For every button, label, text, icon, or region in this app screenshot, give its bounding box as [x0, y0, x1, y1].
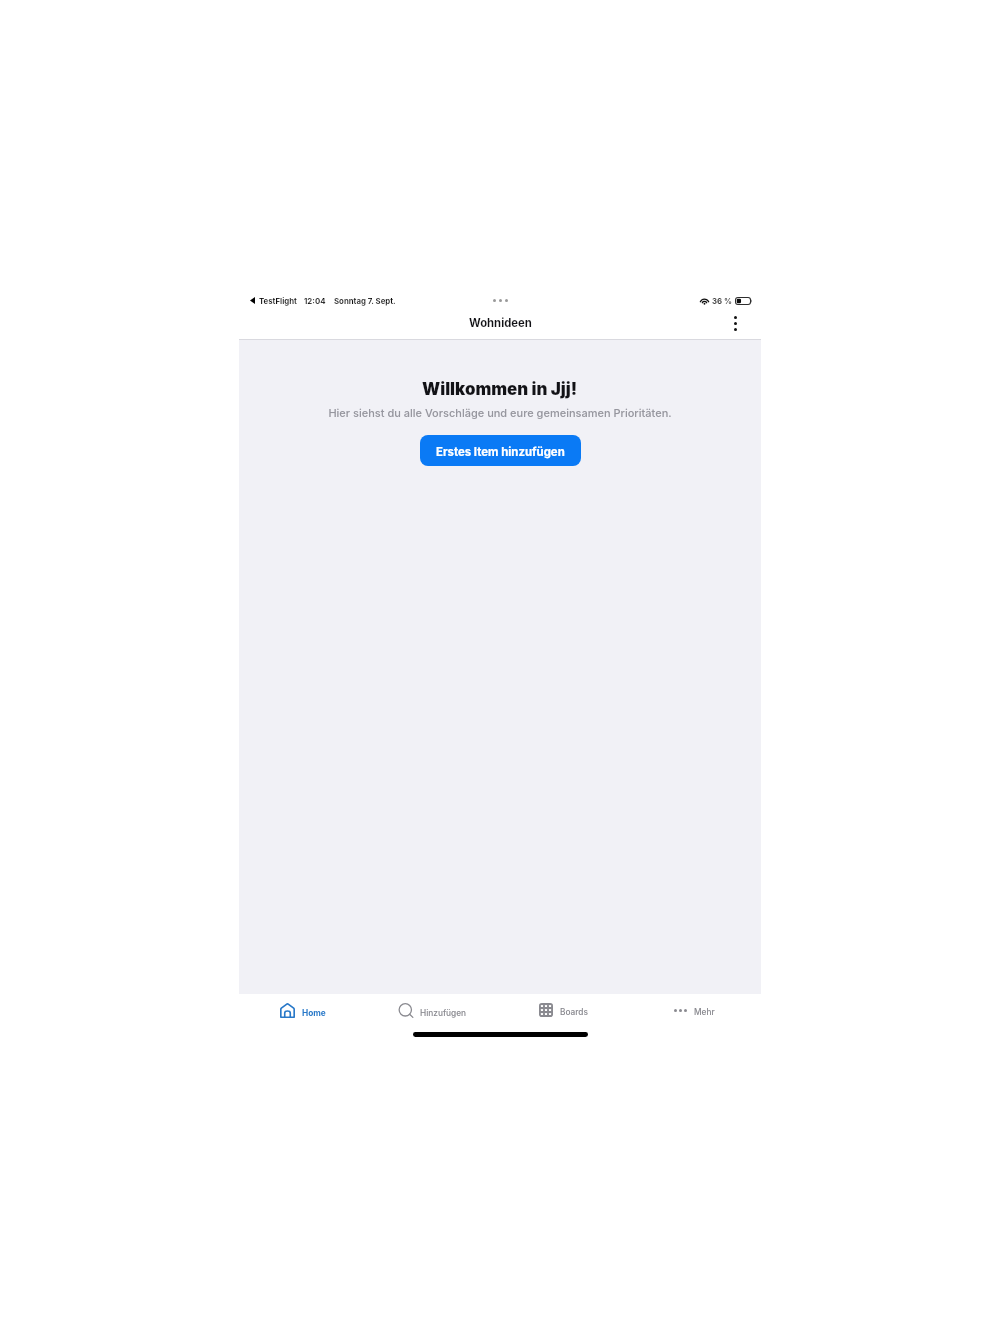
button[interactable]: Add: [368, 994, 498, 1026]
staticText: Wohnideen: [469, 316, 532, 330]
staticText: Willkommen in Jjj!: [422, 379, 578, 399]
staticText: Home: [302, 1008, 326, 1018]
staticText: Erstes Item hinzufügen: [436, 445, 565, 459]
button[interactable]: Home: [238, 994, 368, 1026]
button[interactable]: More: [629, 994, 760, 1026]
staticText: Sonntag 7. Sept.: [334, 296, 396, 305]
button[interactable]: Erstes Item hinzufügen: [420, 435, 581, 466]
button[interactable]: Boards: [498, 994, 629, 1026]
staticText: 12:04: [304, 296, 326, 305]
staticText: 36 %: [712, 296, 732, 305]
staticText: Boards: [560, 1007, 588, 1017]
staticText: Hier siehst du alle Vorschläge und eure …: [328, 406, 672, 419]
staticText: TestFlight: [259, 296, 297, 305]
button[interactable]: More options: [725, 313, 745, 333]
staticText: Mehr: [694, 1007, 715, 1017]
staticText: Hinzufügen: [420, 1008, 467, 1018]
